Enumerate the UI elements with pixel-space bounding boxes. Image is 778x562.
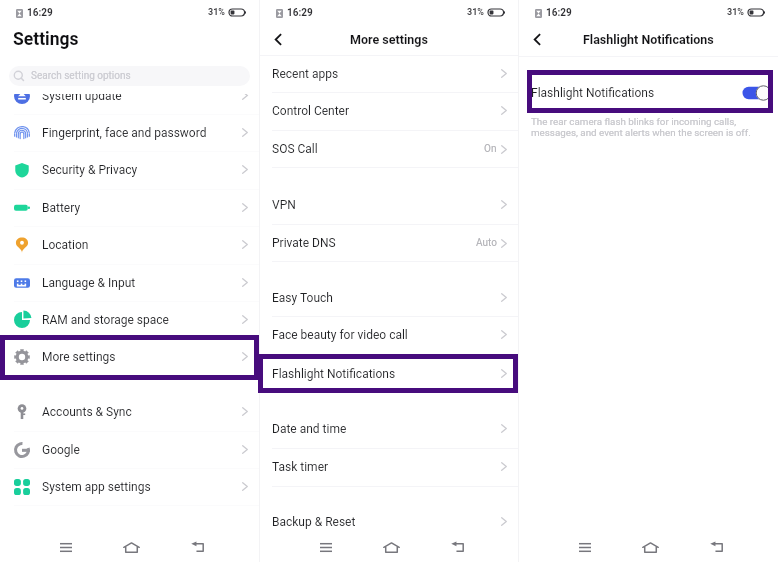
- staticText: Fingerprint, face and password: [42, 126, 207, 140]
- button[interactable]: RAM and storage space: [0, 301, 259, 338]
- staticText: 31%: [467, 7, 484, 18]
- button[interactable]: Back: [703, 534, 729, 560]
- staticText: 16:29: [546, 7, 572, 19]
- button[interactable]: Home: [378, 534, 404, 560]
- staticText: 31%: [727, 7, 744, 18]
- button[interactable]: Security & Privacy: [0, 151, 259, 188]
- button[interactable]: Date and time: [260, 410, 518, 447]
- staticText: System update: [42, 89, 122, 103]
- staticText: Accounts & Sync: [42, 405, 132, 419]
- staticText: Settings: [13, 29, 79, 50]
- button[interactable]: Back: [267, 28, 289, 50]
- staticText: The rear camera flash blinks for incomin…: [531, 116, 751, 138]
- staticText: Flashlight Notifications: [531, 86, 655, 100]
- button[interactable]: Home: [118, 534, 144, 560]
- staticText: Date and time: [272, 422, 347, 436]
- staticText: Face beauty for video call: [272, 328, 408, 342]
- staticText: VPN: [272, 198, 296, 212]
- staticText: Easy Touch: [272, 291, 333, 305]
- staticText: Google: [42, 443, 80, 457]
- button[interactable]: Recent apps: [53, 534, 79, 560]
- staticText: Flashlight Notifications: [583, 32, 714, 47]
- button[interactable]: Task timer: [260, 448, 518, 485]
- button[interactable]: System app settings: [0, 468, 259, 505]
- staticText: Flashlight Notifications: [272, 367, 396, 381]
- staticText: More settings: [42, 350, 116, 364]
- button[interactable]: Search setting options: [9, 66, 250, 86]
- staticText: Location: [42, 238, 89, 252]
- button[interactable]: More settings: [0, 338, 259, 375]
- staticText: Task timer: [272, 460, 329, 474]
- button[interactable]: Home: [637, 534, 663, 560]
- staticText: Backup & Reset: [272, 515, 356, 529]
- staticText: SOS Call: [272, 142, 318, 156]
- button[interactable]: Fingerprint, face and password: [0, 114, 259, 151]
- button[interactable]: Location: [0, 226, 259, 263]
- staticText: RAM and storage space: [42, 313, 169, 327]
- staticText: Recent apps: [272, 67, 339, 81]
- button[interactable]: System update: [0, 77, 259, 114]
- staticText: 16:29: [287, 7, 313, 19]
- button[interactable]: Easy Touch: [260, 279, 518, 316]
- staticText: Control Center: [272, 104, 350, 118]
- staticText: Private DNS: [272, 236, 336, 250]
- button[interactable]: Battery: [0, 189, 259, 226]
- button[interactable]: SOS Call: [260, 130, 518, 167]
- button[interactable]: Flashlight Notifications: [260, 355, 518, 392]
- button[interactable]: Back: [526, 28, 548, 50]
- staticText: 31%: [208, 7, 225, 18]
- button[interactable]: Face beauty for video call: [260, 316, 518, 353]
- button[interactable]: Recent apps: [572, 534, 598, 560]
- button[interactable]: Back: [444, 534, 470, 560]
- button[interactable]: Accounts & Sync: [0, 393, 259, 430]
- staticText: Search setting options: [31, 70, 131, 82]
- button[interactable]: Private DNS: [260, 224, 518, 261]
- button[interactable]: Recent apps: [260, 55, 518, 92]
- staticText: Language & Input: [42, 276, 136, 290]
- button[interactable]: Flashlight Notifications: [519, 73, 778, 112]
- staticText: System app settings: [42, 480, 151, 494]
- button[interactable]: Back: [184, 534, 210, 560]
- staticText: 16:29: [27, 7, 53, 19]
- button[interactable]: Recent apps: [313, 534, 339, 560]
- button[interactable]: Google: [0, 431, 259, 468]
- staticText: On: [484, 143, 497, 155]
- button[interactable]: Language & Input: [0, 264, 259, 301]
- staticText: Security & Privacy: [42, 163, 138, 177]
- staticText: More settings: [350, 32, 428, 47]
- staticText: Auto: [476, 237, 497, 249]
- button[interactable]: Backup & Reset: [260, 503, 518, 540]
- button[interactable]: VPN: [260, 186, 518, 223]
- button[interactable]: Control Center: [260, 92, 518, 129]
- staticText: Battery: [42, 201, 81, 215]
